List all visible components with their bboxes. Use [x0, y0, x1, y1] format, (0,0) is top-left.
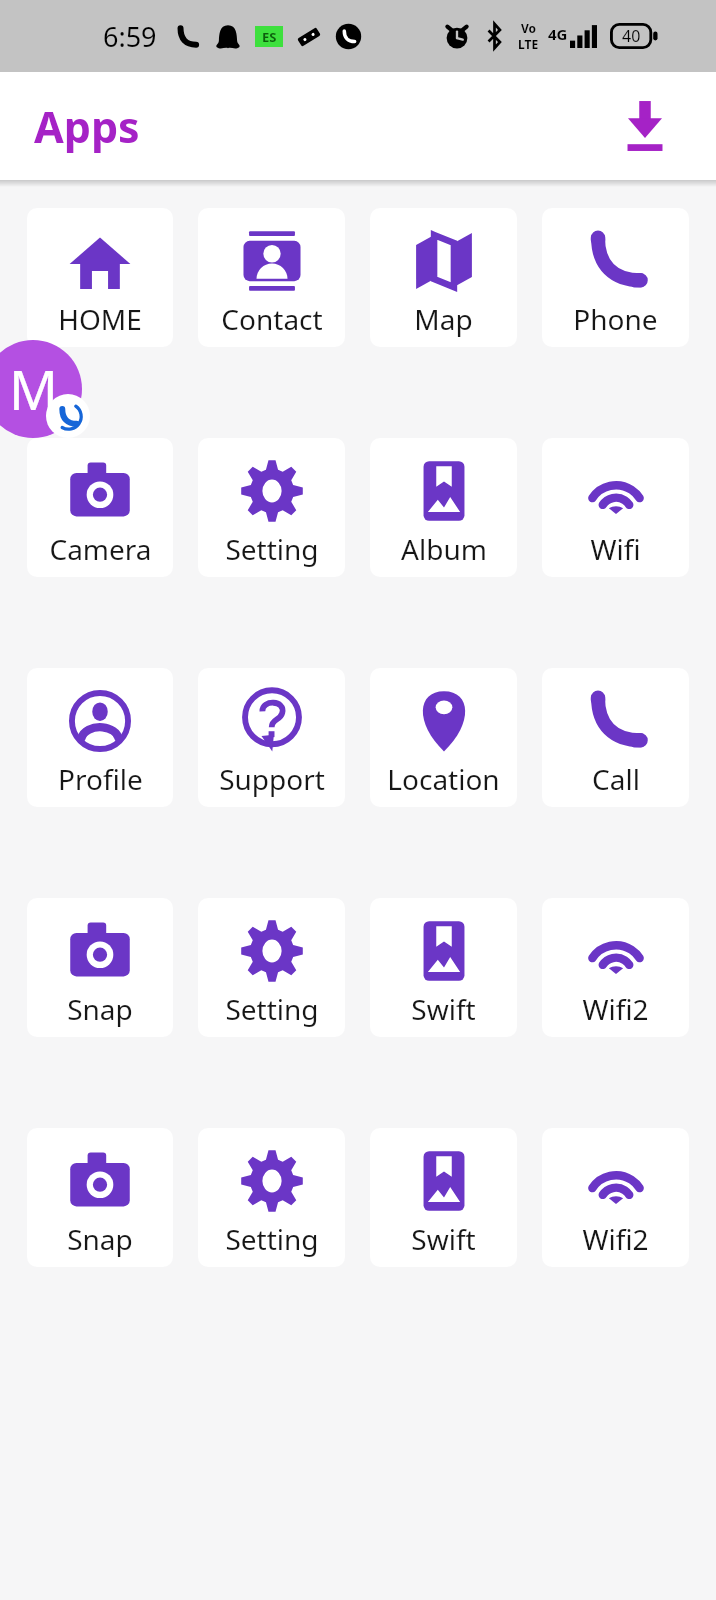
staticText: Location: [387, 760, 500, 798]
button[interactable]: Wifi2: [542, 1128, 689, 1267]
button[interactable]: Wifi: [542, 438, 689, 577]
button[interactable]: HOME: [27, 208, 173, 347]
staticText: Wifi2: [582, 990, 649, 1028]
button[interactable]: Download: [614, 95, 676, 157]
staticText: Vo: [521, 20, 537, 36]
staticText: Swift: [411, 1220, 476, 1258]
staticText: Snap: [67, 990, 133, 1028]
staticText: Snap: [67, 1220, 133, 1258]
button[interactable]: Support: [198, 668, 345, 807]
staticText: Call: [592, 760, 640, 798]
button[interactable]: Swift: [370, 898, 517, 1037]
button[interactable]: Ongoing call with M: [0, 340, 82, 438]
staticText: HOME: [58, 300, 142, 338]
button[interactable]: Snap: [27, 898, 173, 1037]
staticText: Contact: [221, 300, 323, 338]
staticText: Phone: [573, 300, 658, 338]
staticText: Setting: [225, 990, 319, 1028]
button[interactable]: Map: [370, 208, 517, 347]
staticText: Wifi2: [582, 1220, 649, 1258]
button[interactable]: Swift: [370, 1128, 517, 1267]
staticText: Setting: [225, 1220, 319, 1258]
staticText: Swift: [411, 990, 476, 1028]
staticText: 4G: [548, 24, 568, 44]
staticText: M: [9, 352, 58, 426]
staticText: Map: [414, 300, 473, 338]
staticText: Wifi: [590, 530, 641, 568]
staticText: Album: [401, 530, 487, 568]
button[interactable]: Album: [370, 438, 517, 577]
button[interactable]: Wifi2: [542, 898, 689, 1037]
staticText: Support: [219, 760, 325, 798]
button[interactable]: Snap: [27, 1128, 173, 1267]
staticText: ES: [262, 28, 277, 46]
staticText: Apps: [34, 97, 140, 156]
button[interactable]: Contact: [198, 208, 345, 347]
button[interactable]: Phone: [542, 208, 689, 347]
button[interactable]: Call: [542, 668, 689, 807]
button[interactable]: Profile: [27, 668, 173, 807]
staticText: Profile: [58, 760, 143, 798]
button[interactable]: Setting: [198, 1128, 345, 1267]
staticText: LTE: [518, 36, 539, 52]
button[interactable]: Location: [370, 668, 517, 807]
staticText: Setting: [225, 530, 319, 568]
staticText: Camera: [49, 530, 152, 568]
button[interactable]: Setting: [198, 898, 345, 1037]
staticText: 40: [622, 25, 641, 47]
staticText: 6:59: [103, 18, 157, 55]
button[interactable]: Camera: [27, 438, 173, 577]
button[interactable]: Setting: [198, 438, 345, 577]
